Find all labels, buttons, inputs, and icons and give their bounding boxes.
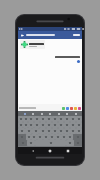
button[interactable]: Key bbox=[64, 116, 70, 122]
button[interactable]: Keyboard tool bbox=[48, 112, 52, 116]
button[interactable] bbox=[72, 33, 81, 37]
button[interactable]: Attach bbox=[73, 106, 77, 110]
button[interactable]: Key bbox=[58, 122, 64, 128]
button[interactable]: Key bbox=[35, 140, 66, 146]
button[interactable]: Key bbox=[52, 128, 58, 134]
button[interactable]: Key bbox=[70, 128, 76, 134]
button[interactable]: Back bbox=[30, 148, 36, 154]
button[interactable]: Recents bbox=[65, 148, 71, 154]
button[interactable]: Key bbox=[76, 122, 82, 128]
button[interactable] bbox=[20, 40, 45, 49]
button[interactable]: Key bbox=[64, 122, 70, 128]
button[interactable]: Back bbox=[18, 31, 82, 39]
button[interactable]: Key bbox=[76, 116, 82, 122]
button[interactable]: Key bbox=[32, 128, 39, 134]
button[interactable]: Key bbox=[43, 134, 49, 140]
button[interactable]: Key bbox=[61, 134, 67, 140]
button[interactable]: Keyboard tool bbox=[57, 112, 61, 116]
button[interactable]: Attach bbox=[65, 106, 69, 110]
button[interactable]: Key bbox=[23, 122, 28, 128]
button[interactable]: Key bbox=[49, 134, 55, 140]
button[interactable]: Key bbox=[26, 134, 31, 140]
button[interactable]: Key bbox=[25, 128, 32, 134]
button[interactable]: Key bbox=[66, 140, 74, 146]
button[interactable]: Keyboard tool bbox=[65, 112, 69, 116]
button[interactable]: Key bbox=[70, 116, 76, 122]
button[interactable]: Key bbox=[34, 116, 40, 122]
button[interactable]: Keyboard tool bbox=[74, 112, 78, 116]
button[interactable]: Key bbox=[18, 140, 27, 146]
button[interactable]: Key bbox=[40, 122, 46, 128]
button[interactable]: Attach bbox=[18, 104, 82, 111]
button[interactable]: Keyboard tool bbox=[40, 112, 44, 116]
button[interactable]: Keyboard tool bbox=[23, 112, 27, 116]
button[interactable]: Key bbox=[52, 116, 58, 122]
button[interactable]: Attach bbox=[77, 106, 81, 110]
button[interactable]: Key bbox=[46, 122, 52, 128]
button[interactable]: Key bbox=[27, 140, 35, 146]
button[interactable]: Key bbox=[52, 122, 58, 128]
button[interactable]: Key bbox=[34, 122, 40, 128]
button[interactable]: Key bbox=[18, 116, 23, 122]
button[interactable]: Key bbox=[70, 122, 76, 128]
button[interactable]: Key bbox=[64, 128, 70, 134]
button[interactable]: Key bbox=[76, 128, 82, 134]
button[interactable]: Key bbox=[55, 134, 61, 140]
button[interactable]: Keyboard tool bbox=[31, 112, 35, 116]
button[interactable]: Key bbox=[37, 134, 43, 140]
button[interactable]: Key bbox=[74, 140, 82, 146]
button[interactable]: Key bbox=[73, 134, 82, 140]
button[interactable]: Key bbox=[67, 134, 73, 140]
button[interactable]: Back bbox=[19, 32, 25, 38]
button[interactable]: Attach bbox=[69, 106, 73, 110]
button[interactable]: Key bbox=[58, 128, 64, 134]
button[interactable]: Key bbox=[58, 116, 64, 122]
button[interactable]: Attach bbox=[61, 106, 65, 110]
button[interactable]: Key bbox=[28, 122, 34, 128]
button[interactable]: Key bbox=[28, 116, 34, 122]
button[interactable]: Key bbox=[18, 122, 23, 128]
button[interactable]: Key bbox=[18, 134, 26, 140]
button[interactable]: Key bbox=[39, 128, 46, 134]
button[interactable]: Key bbox=[18, 128, 25, 134]
button[interactable]: Key bbox=[46, 116, 52, 122]
button[interactable]: Key bbox=[46, 128, 52, 134]
button[interactable]: Home bbox=[47, 148, 53, 154]
button[interactable]: Key bbox=[23, 116, 28, 122]
button[interactable]: Key bbox=[40, 116, 46, 122]
button[interactable]: Key bbox=[31, 134, 37, 140]
